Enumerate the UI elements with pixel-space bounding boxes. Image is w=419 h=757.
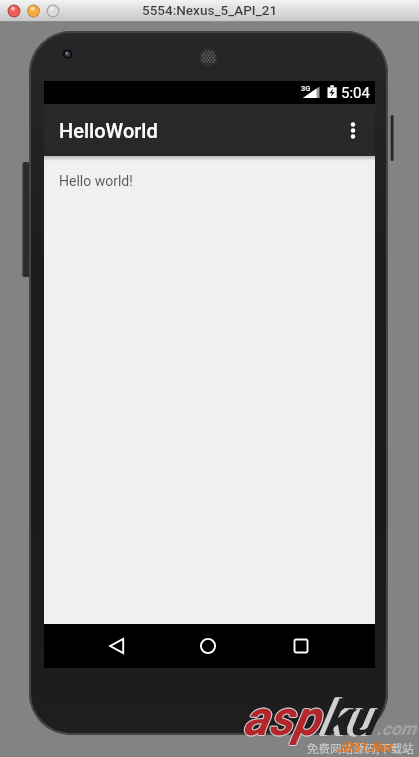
button[interactable] [281,624,321,668]
staticText: 免费网站源码,下载站 [307,740,414,757]
button[interactable] [331,104,375,156]
staticText: aspku [243,691,372,748]
button[interactable] [97,624,137,668]
staticText: .com [377,718,417,739]
staticText: asp [243,690,320,747]
staticText: 5554:Nexus_5_API_21 [142,2,278,18]
staticText: aspku [244,690,373,747]
staticText: Hello world! [59,173,133,189]
button[interactable] [188,624,228,668]
staticText: ku [324,690,377,747]
staticText: aspku [242,690,371,747]
staticText: HelloWorld [59,119,158,142]
button[interactable]: HelloWorld [44,104,375,156]
staticText: 3G [301,84,311,93]
staticText: aspku [243,689,372,746]
staticText: 5:04 [341,84,370,102]
staticText: JB51.Net [336,739,392,755]
